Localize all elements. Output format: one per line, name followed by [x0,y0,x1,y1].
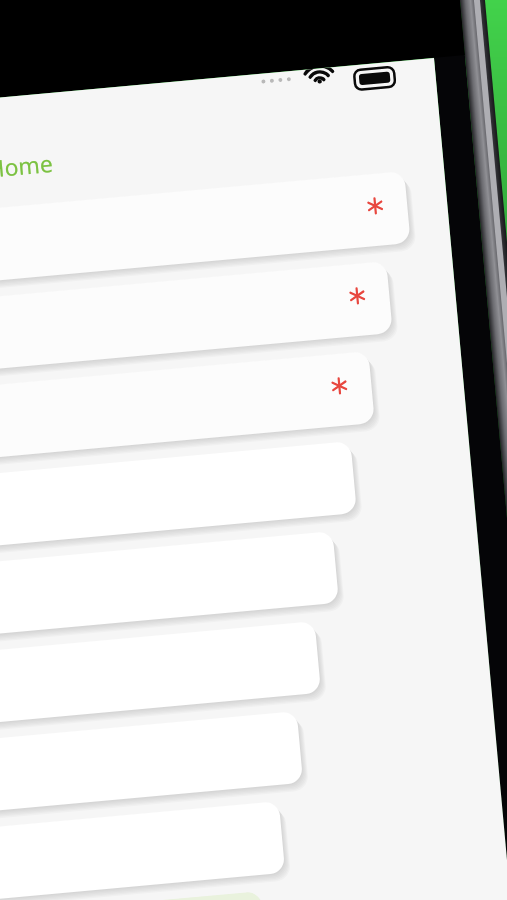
button[interactable]: Phone app mockup [0,0,507,900]
